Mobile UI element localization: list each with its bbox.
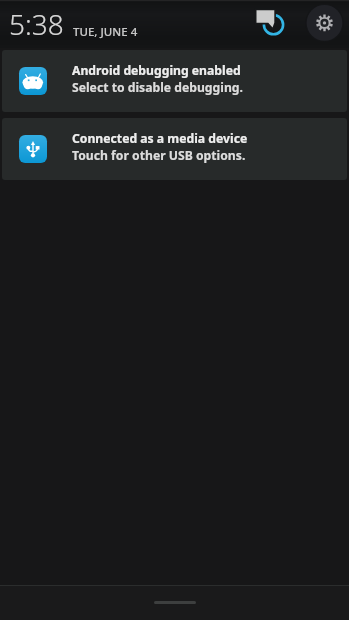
button[interactable]: Settings	[304, 2, 345, 43]
button[interactable]: Connected as a media device	[2, 118, 347, 180]
button[interactable]: Android debugging enabled	[2, 50, 347, 112]
staticText: Touch for other USB options.	[72, 147, 246, 164]
staticText: Android debugging enabled	[72, 62, 241, 79]
staticText: Connected as a media device	[72, 130, 248, 147]
staticText: Select to disable debugging.	[72, 79, 243, 96]
staticText: 5:38	[9, 5, 64, 43]
button[interactable]: Close notification shade	[0, 586, 349, 620]
staticText: TUE, JUNE 4	[73, 24, 138, 40]
button[interactable]: Quick settings	[250, 4, 290, 44]
